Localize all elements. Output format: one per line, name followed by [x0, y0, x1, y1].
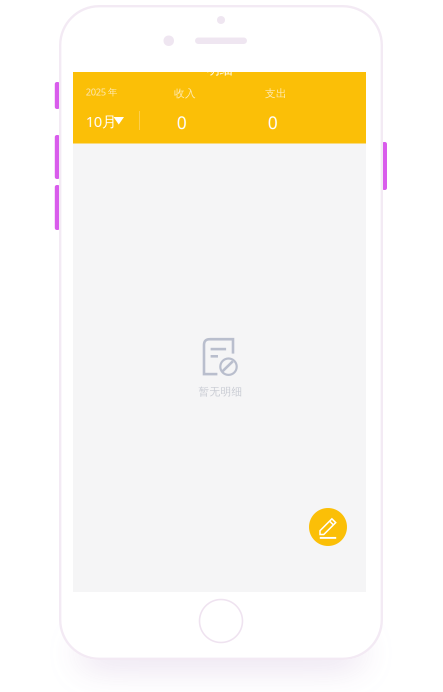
- button[interactable]: Add record: [309, 508, 347, 546]
- button[interactable]: 2025 年: [86, 87, 144, 131]
- staticText: 2025 年: [86, 86, 117, 98]
- staticText: 10月: [86, 111, 117, 131]
- staticText: 明细: [206, 61, 232, 78]
- staticText: 0: [268, 111, 278, 134]
- staticText: 支出: [265, 87, 287, 100]
- staticText: 0: [177, 111, 187, 134]
- staticText: 暂无明细: [198, 385, 242, 398]
- staticText: 收入: [174, 87, 196, 100]
